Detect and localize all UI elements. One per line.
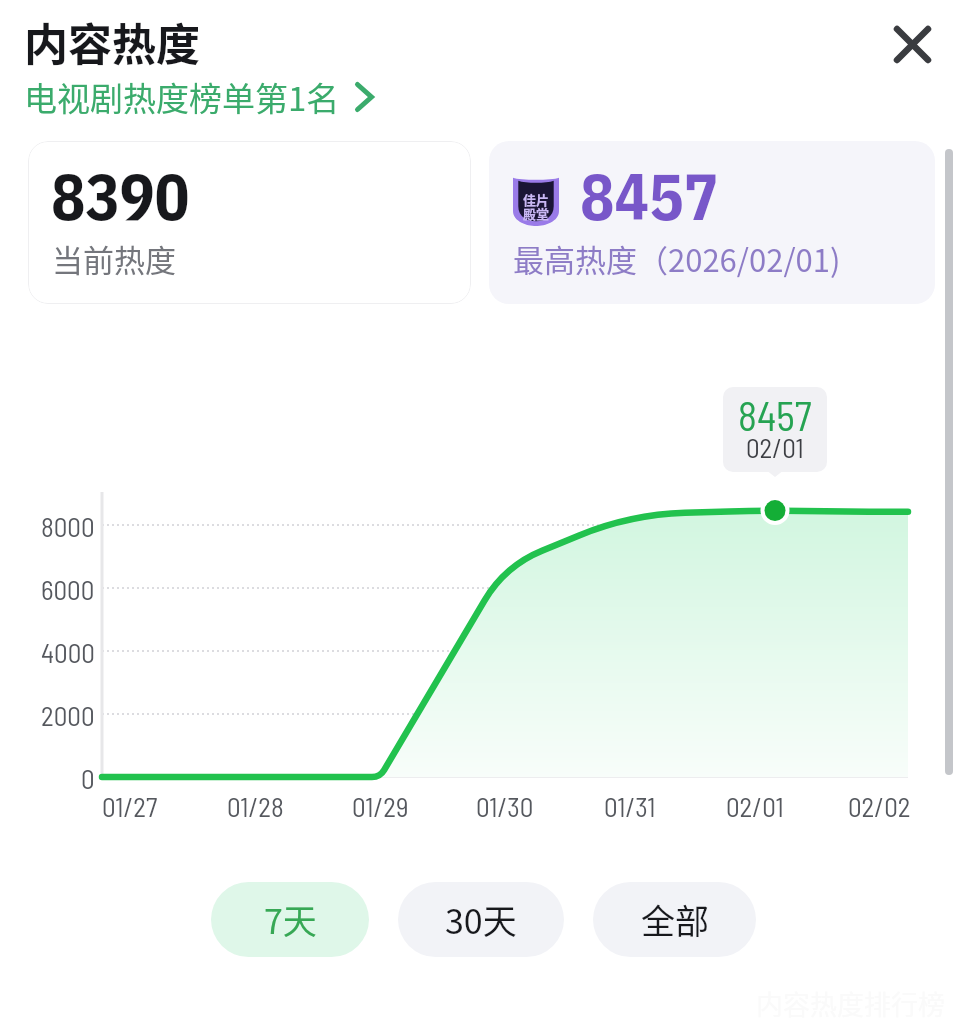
- staticText: 电视剧热度榜单第1名: [24, 73, 340, 121]
- staticText: 佳片: [523, 190, 550, 209]
- staticText: 当前热度: [52, 236, 176, 281]
- staticText: 01/28: [227, 790, 284, 822]
- staticText: 8390: [51, 154, 190, 237]
- staticText: 7天: [264, 895, 317, 944]
- button[interactable]: 8390: [28, 141, 471, 304]
- staticText: 8457: [738, 391, 812, 439]
- staticText: 8000: [41, 510, 95, 542]
- staticText: 2000: [41, 699, 95, 731]
- staticText: 01/31: [604, 790, 656, 822]
- button[interactable]: 佳片: [489, 141, 935, 304]
- button[interactable]: 30天: [398, 882, 564, 957]
- staticText: 02/01: [726, 790, 784, 822]
- button[interactable]: 7天: [211, 882, 369, 957]
- staticText: 最高热度（2026/02/01): [513, 236, 841, 281]
- staticText: 02/01: [746, 431, 804, 463]
- staticText: 02/02: [848, 790, 911, 822]
- button[interactable]: 全部: [593, 882, 756, 957]
- staticText: 8457: [580, 154, 719, 237]
- staticText: 全部: [641, 895, 709, 944]
- staticText: 殿堂: [523, 204, 550, 223]
- staticText: 01/27: [102, 790, 158, 822]
- staticText: 01/30: [476, 790, 534, 822]
- staticText: 0: [81, 762, 95, 794]
- staticText: 内容热度: [24, 10, 200, 74]
- staticText: 01/29: [352, 790, 409, 822]
- button[interactable]: 电视剧热度榜单第1名: [24, 73, 373, 121]
- staticText: 4000: [41, 636, 95, 668]
- button[interactable]: 内容热度: [24, 10, 200, 74]
- staticText: 6000: [41, 573, 95, 605]
- staticText: 30天: [445, 895, 517, 944]
- button[interactable]: Close: [882, 14, 942, 74]
